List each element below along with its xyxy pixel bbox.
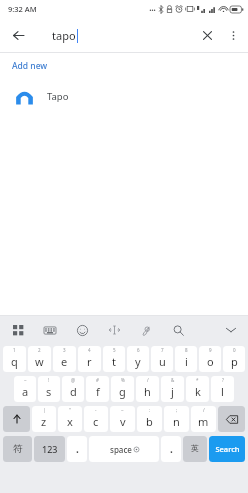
button[interactable]: ? <box>211 376 234 402</box>
button[interactable]: Emoji <box>73 321 91 339</box>
staticText: ; <box>176 407 178 413</box>
staticText: j <box>171 384 174 399</box>
staticText: d <box>70 384 77 399</box>
staticText: ~ <box>121 407 124 413</box>
button[interactable]: " <box>58 406 82 432</box>
staticText: tapo <box>52 28 76 43</box>
staticText: a <box>22 384 29 399</box>
staticText: 4 <box>88 347 91 353</box>
staticText: 6 <box>137 347 140 353</box>
button[interactable]: 6 <box>127 346 149 372</box>
staticText: p <box>231 354 238 369</box>
button[interactable]: . <box>67 436 87 462</box>
button[interactable]: ! <box>38 376 60 402</box>
staticText: v <box>120 414 126 429</box>
staticText: r <box>87 354 92 369</box>
staticText: f <box>96 384 100 399</box>
button[interactable]: / <box>191 406 216 432</box>
button[interactable]: Search <box>209 436 245 462</box>
staticText: k <box>195 384 201 399</box>
staticText: g <box>119 384 126 399</box>
button[interactable]: space <box>89 436 159 462</box>
staticText: x <box>67 414 73 429</box>
staticText: w <box>35 354 44 369</box>
staticText: # <box>96 377 99 383</box>
staticText: h <box>144 384 151 399</box>
staticText: . <box>76 442 79 456</box>
staticText: 9 <box>209 347 212 353</box>
button[interactable]: Backspace <box>218 406 245 432</box>
button[interactable]: 9 <box>199 346 221 372</box>
staticText: . <box>170 442 173 456</box>
staticText: 2 <box>38 347 41 353</box>
staticText: e <box>61 354 68 369</box>
staticText: l <box>221 384 224 399</box>
button[interactable]: @ <box>62 376 84 402</box>
staticText: i <box>185 354 188 369</box>
button[interactable]: . <box>161 436 181 462</box>
button[interactable]: & <box>161 376 184 402</box>
button[interactable]: ; <box>164 406 189 432</box>
staticText: Add new <box>12 60 48 72</box>
button[interactable]: : <box>137 406 162 432</box>
button[interactable]: / <box>136 376 159 402</box>
button[interactable]: Keyboard layout <box>41 321 59 339</box>
button[interactable]: | <box>32 406 56 432</box>
staticText: 0 <box>233 347 236 353</box>
button[interactable]: 5 <box>103 346 125 372</box>
button[interactable]: Apps <box>9 321 27 339</box>
button[interactable]: - <box>84 406 108 432</box>
button[interactable]: 1 <box>3 346 26 372</box>
staticText: u <box>159 354 166 369</box>
button[interactable]: Back <box>7 24 29 46</box>
button[interactable]: * <box>186 376 209 402</box>
button[interactable]: Clear <box>196 24 218 46</box>
button[interactable]: Shift <box>3 406 30 432</box>
staticText: * <box>196 377 199 383</box>
button[interactable]: 2 <box>28 346 51 372</box>
staticText: b <box>146 414 153 429</box>
staticText: / <box>147 377 149 383</box>
staticText: m <box>198 414 209 429</box>
staticText: q <box>11 354 18 369</box>
button[interactable]: 7 <box>151 346 173 372</box>
button[interactable]: 4 <box>78 346 101 372</box>
staticText: : <box>149 407 151 413</box>
button[interactable]: 0 <box>223 346 245 372</box>
staticText: space <box>110 444 132 455</box>
staticText: z <box>41 414 47 429</box>
button[interactable]: 3 <box>53 346 76 372</box>
staticText: s <box>46 384 52 399</box>
staticText: ! <box>48 377 50 383</box>
button[interactable]: 8 <box>175 346 197 372</box>
button[interactable]: ~ <box>110 406 135 432</box>
button[interactable]: ~ <box>14 376 36 402</box>
button[interactable]: More options <box>222 24 244 46</box>
button[interactable]: Collapse <box>222 321 240 339</box>
staticText: 7 <box>161 347 164 353</box>
staticText: Tapo <box>47 90 69 103</box>
button[interactable]: Change language <box>183 436 207 462</box>
staticText: n <box>173 414 180 429</box>
staticText: 符 <box>13 443 23 455</box>
staticText: o <box>207 354 214 369</box>
staticText: ~ <box>24 377 27 383</box>
staticText: @ <box>71 377 76 383</box>
button[interactable]: Search <box>169 321 187 339</box>
staticText: 3 <box>63 347 66 353</box>
staticText: c <box>93 414 99 429</box>
staticText: 英 <box>191 443 199 453</box>
button[interactable]: Tapo <box>0 79 248 113</box>
button[interactable]: Clipboard <box>137 321 155 339</box>
button[interactable]: Add new <box>0 53 248 79</box>
staticText: % <box>121 377 125 383</box>
button[interactable]: % <box>111 376 134 402</box>
button[interactable]: 123 <box>34 436 65 462</box>
staticText: | <box>43 407 46 413</box>
staticText: 8 <box>185 347 188 353</box>
staticText: " <box>69 407 71 413</box>
button[interactable]: Text editing <box>105 321 123 339</box>
button[interactable]: 符 <box>3 436 32 462</box>
staticText: 9:32 AM <box>8 4 37 14</box>
button[interactable]: # <box>86 376 109 402</box>
